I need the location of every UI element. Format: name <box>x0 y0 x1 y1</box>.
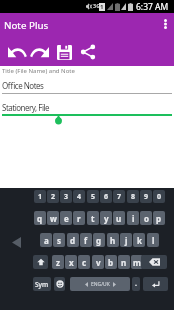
button[interactable]: Enter <box>143 277 168 291</box>
button[interactable]: y <box>100 211 112 225</box>
button[interactable]: b <box>105 255 117 269</box>
staticText: 8 <box>131 192 136 202</box>
staticText: ENG/UK <box>91 281 110 288</box>
button[interactable]: Share <box>77 41 98 63</box>
button[interactable]: q <box>34 211 46 225</box>
staticText: q <box>37 213 43 224</box>
button[interactable]: p <box>153 211 165 225</box>
staticText: 6:37 AM <box>136 1 169 13</box>
button[interactable]: h <box>107 233 119 247</box>
button[interactable]: 5 <box>87 190 99 203</box>
button[interactable]: 6 <box>100 190 112 203</box>
button[interactable]: c <box>78 255 90 269</box>
staticText: 7 <box>117 192 122 202</box>
staticText: p <box>156 213 162 224</box>
button[interactable]: Undo <box>4 41 30 63</box>
staticText: s <box>57 235 62 246</box>
staticText: j <box>125 235 128 246</box>
staticText: u <box>116 213 122 224</box>
staticText: v <box>96 257 101 268</box>
staticText: 1 <box>100 3 104 11</box>
button[interactable]: Save <box>54 41 75 63</box>
button[interactable]: 4 <box>73 190 85 203</box>
staticText: x <box>69 257 74 268</box>
staticText: 9 <box>144 192 149 202</box>
staticText: a <box>44 235 49 246</box>
button[interactable]: Redo <box>26 41 53 63</box>
staticText: n <box>121 257 127 268</box>
button[interactable]: g <box>93 233 105 247</box>
button[interactable]: Space <box>70 277 130 291</box>
button[interactable]: j <box>120 233 132 247</box>
staticText: b <box>108 257 114 268</box>
staticText: Stationery, File <box>2 102 50 113</box>
staticText: 2 <box>51 192 56 202</box>
staticText: 0 <box>157 192 162 202</box>
staticText: 3 <box>64 192 69 202</box>
button[interactable]: Sym <box>33 277 51 291</box>
button[interactable]: r <box>73 211 85 225</box>
button[interactable]: l <box>147 233 159 247</box>
button[interactable]: t <box>87 211 99 225</box>
button[interactable]: Emoji <box>54 277 65 291</box>
staticText: c <box>82 257 87 268</box>
staticText: Title (File Name) and Note <box>2 67 75 75</box>
button[interactable]: k <box>133 233 145 247</box>
staticText: 4 <box>77 192 82 202</box>
button[interactable]: Previous <box>8 234 25 251</box>
staticText: Office Notes <box>2 80 44 91</box>
staticText: Sym <box>35 280 49 289</box>
button[interactable]: e <box>60 211 72 225</box>
staticText: e <box>64 213 69 224</box>
button[interactable]: w <box>47 211 59 225</box>
button[interactable]: 0 <box>153 190 165 203</box>
button[interactable]: a <box>40 233 52 247</box>
staticText: l <box>152 235 155 246</box>
button[interactable]: More options <box>157 14 174 34</box>
staticText: 3G <box>93 2 101 9</box>
button[interactable]: Shift <box>33 255 48 269</box>
button[interactable]: s <box>53 233 65 247</box>
button[interactable]: 7 <box>113 190 125 203</box>
staticText: i <box>132 213 135 224</box>
button[interactable]: x <box>65 255 77 269</box>
staticText: y <box>104 213 109 224</box>
staticText: h <box>110 235 116 246</box>
button[interactable]: i <box>127 211 139 225</box>
button[interactable]: m <box>131 255 143 269</box>
button[interactable]: 9 <box>140 190 152 203</box>
staticText: f <box>84 235 88 246</box>
button[interactable]: v <box>92 255 104 269</box>
staticText: Note Plus <box>4 19 49 32</box>
button[interactable]: u <box>113 211 125 225</box>
staticText: 1 <box>38 192 43 202</box>
staticText: . <box>135 279 137 289</box>
button[interactable]: . <box>132 277 140 291</box>
staticText: g <box>96 235 102 246</box>
staticText: w <box>50 213 57 224</box>
button[interactable]: f <box>80 233 92 247</box>
staticText: k <box>137 235 142 246</box>
staticText: 6 <box>104 192 109 202</box>
button[interactable]: 1 <box>34 190 46 203</box>
staticText: d <box>70 235 76 246</box>
button[interactable]: 2 <box>47 190 59 203</box>
staticText: z <box>56 257 60 268</box>
staticText: 5 <box>91 192 96 202</box>
button[interactable]: o <box>140 211 152 225</box>
button[interactable]: 8 <box>127 190 139 203</box>
staticText: o <box>144 213 149 224</box>
button[interactable]: d <box>67 233 79 247</box>
button[interactable]: z <box>52 255 64 269</box>
staticText: r <box>77 213 81 224</box>
button[interactable]: 3 <box>60 190 72 203</box>
button[interactable]: Backspace <box>141 255 167 269</box>
staticText: t <box>91 213 95 224</box>
staticText: m <box>133 257 141 268</box>
button[interactable]: n <box>118 255 130 269</box>
